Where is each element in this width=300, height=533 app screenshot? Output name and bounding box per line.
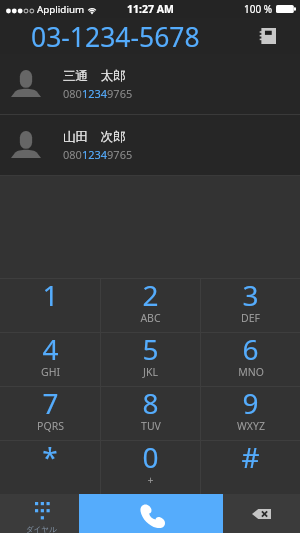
staticText: 1 xyxy=(42,276,59,314)
staticText: 6 xyxy=(242,330,259,368)
button[interactable]: 1 xyxy=(0,279,100,332)
staticText: + xyxy=(147,473,154,487)
staticText: 9 xyxy=(242,384,259,422)
button[interactable]: Delete xyxy=(223,494,300,533)
button[interactable]: # xyxy=(201,441,300,494)
staticText: JKL xyxy=(143,365,158,379)
staticText: 4 xyxy=(42,330,59,368)
staticText: 8 xyxy=(142,384,159,422)
staticText: MNO xyxy=(238,365,264,379)
button[interactable]: Call xyxy=(79,494,223,533)
staticText: 08012349765 xyxy=(63,147,133,162)
button[interactable]: * xyxy=(0,441,100,494)
staticText: PQRS xyxy=(37,419,64,433)
staticText: 100 % xyxy=(244,2,273,16)
staticText: TUV xyxy=(141,419,161,433)
staticText: 08012349765 xyxy=(63,86,133,101)
button[interactable]: 4 xyxy=(0,333,100,386)
button[interactable]: 3 xyxy=(201,279,300,332)
staticText: ダイヤル xyxy=(26,525,57,533)
staticText: 03-1234-5678 xyxy=(31,19,200,55)
staticText: Applidium xyxy=(37,3,85,16)
staticText: ABC xyxy=(140,311,161,325)
staticText: * xyxy=(42,438,58,476)
button[interactable]: ダイヤル xyxy=(0,494,79,533)
staticText: 7 xyxy=(42,384,59,422)
button[interactable]: 7 xyxy=(0,387,100,440)
button[interactable]: 8 xyxy=(101,387,200,440)
button[interactable]: 2 xyxy=(101,279,200,332)
button[interactable]: 5 xyxy=(101,333,200,386)
staticText: # xyxy=(241,438,260,476)
staticText: GHI xyxy=(41,365,60,379)
button[interactable]: 0 xyxy=(101,441,200,494)
staticText: DEF xyxy=(241,311,260,325)
button[interactable]: 6 xyxy=(201,333,300,386)
staticText: 5 xyxy=(142,330,159,368)
staticText: WXYZ xyxy=(237,419,265,433)
staticText: 0 xyxy=(142,438,159,476)
staticText: 2 xyxy=(142,276,159,314)
button[interactable]: 三通 太郎 xyxy=(0,54,300,114)
button[interactable]: 9 xyxy=(201,387,300,440)
button[interactable]: Contacts xyxy=(252,23,282,49)
button[interactable]: 山田 次郎 xyxy=(0,115,300,175)
staticText: 山田 次郎 xyxy=(63,128,126,145)
staticText: 11:27 AM xyxy=(127,2,174,16)
staticText: 3 xyxy=(242,276,259,314)
staticText: 三通 太郎 xyxy=(63,67,126,84)
